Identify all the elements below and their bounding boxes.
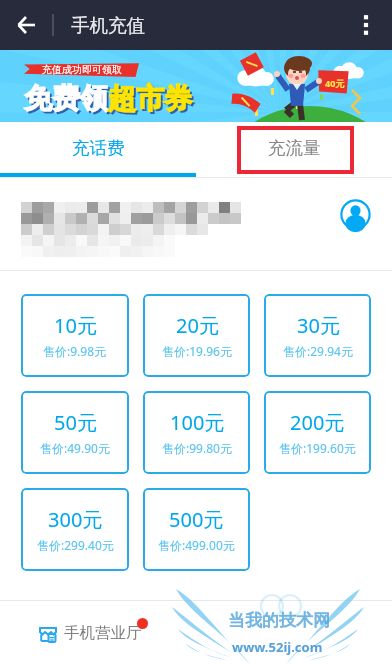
button[interactable]: 100元 [143,391,250,474]
button[interactable]: 300元 [21,488,129,571]
button[interactable]: More options [346,5,386,45]
staticText: 手机营业厅 [64,623,142,643]
staticText: 充流量 [268,137,321,159]
staticText: 售价:29.94元 [283,343,353,359]
staticText: 20元 [176,312,219,339]
button[interactable]: 200元 [264,391,371,474]
button[interactable]: 30元 [264,294,371,377]
button[interactable]: 50元 [21,391,129,474]
staticText: 100元 [170,409,225,436]
button[interactable]: 20元 [143,294,250,377]
staticText: 超市券 [110,83,194,118]
staticText: 10元 [54,312,97,339]
staticText: 超市券 [108,81,192,116]
staticText: 售价:49.90元 [40,440,110,456]
staticText: 当我的技术网 [228,610,330,631]
staticText: 手机充值 [71,14,145,37]
button[interactable]: 10元 [21,294,129,377]
staticText: 50元 [54,409,97,436]
staticText: 售价:199.60元 [279,440,356,456]
staticText: 免费领 [24,81,108,116]
staticText: 充值成功即可领取 [42,63,122,76]
staticText: 500元 [169,506,224,533]
staticText: 300元 [48,506,103,533]
button[interactable]: 手机营业厅 [39,623,142,643]
button[interactable]: 500元 [143,488,250,571]
staticText: 售价:9.98元 [43,343,107,359]
staticText: 免费领 [26,83,110,118]
staticText: 售价:299.40元 [37,537,114,553]
staticText: 售价:19.96元 [162,343,232,359]
button[interactable]: Contacts [339,198,371,230]
button[interactable]: 40元 [0,50,392,122]
staticText: 售价:499.00元 [158,537,235,553]
staticText: 200元 [290,409,345,436]
staticText: www.52ij.com [232,638,323,656]
staticText: 40元 [325,77,345,89]
button[interactable]: 充话费 [0,122,196,173]
staticText: 售价:99.80元 [162,440,232,456]
button[interactable]: Back [6,5,46,45]
staticText: 30元 [297,312,340,339]
staticText: 充话费 [72,137,125,159]
button[interactable]: 充流量 [196,122,392,173]
